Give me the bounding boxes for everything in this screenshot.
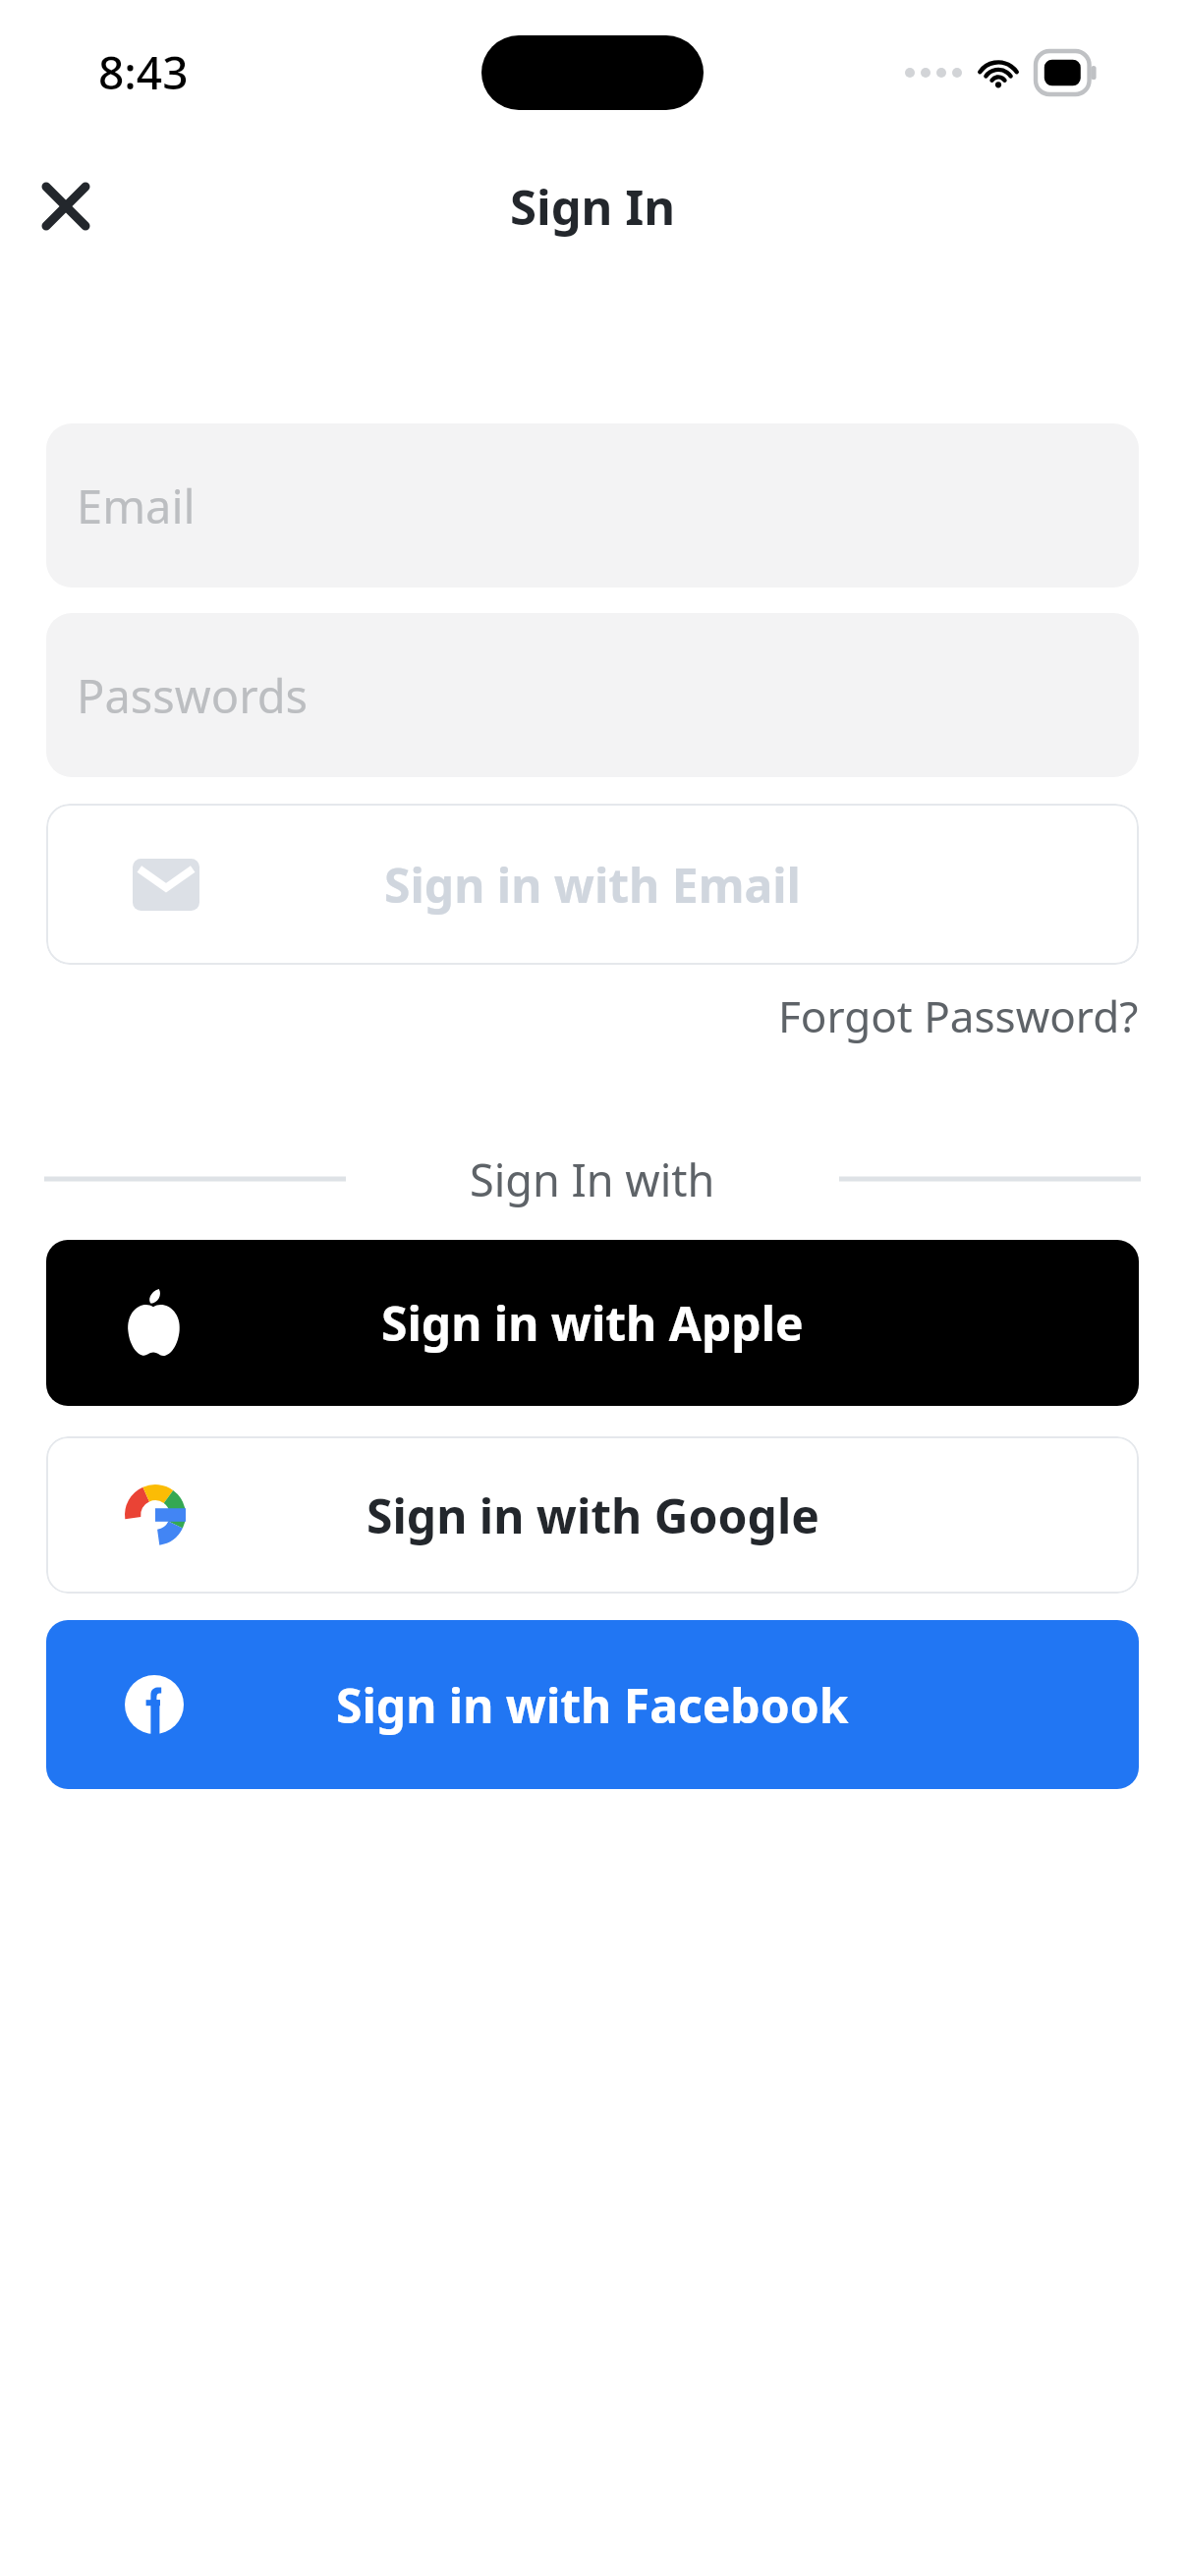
- button[interactable]: Sign in with Google: [46, 1436, 1139, 1594]
- staticText: Sign in with Facebook: [336, 1673, 849, 1737]
- staticText: 8:43: [98, 41, 189, 103]
- button[interactable]: Email: [46, 423, 1139, 588]
- staticText: Sign in with Email: [384, 853, 801, 917]
- button[interactable]: Passwords: [46, 613, 1139, 777]
- button[interactable]: Sign in with Apple: [46, 1240, 1139, 1406]
- button[interactable]: Forgot Password?: [46, 986, 1139, 1045]
- staticText: Sign in with Google: [367, 1484, 819, 1547]
- staticText: Sign in with Apple: [381, 1291, 804, 1355]
- staticText: Forgot Password?: [778, 986, 1139, 1045]
- staticText: Sign In with: [470, 1149, 715, 1208]
- button[interactable]: Close: [29, 170, 102, 243]
- staticText: Email: [77, 475, 196, 537]
- button[interactable]: Sign in with Facebook: [46, 1620, 1139, 1789]
- staticText: Sign In: [510, 174, 676, 240]
- button[interactable]: Sign in with Email: [46, 804, 1139, 965]
- staticText: Passwords: [77, 664, 309, 727]
